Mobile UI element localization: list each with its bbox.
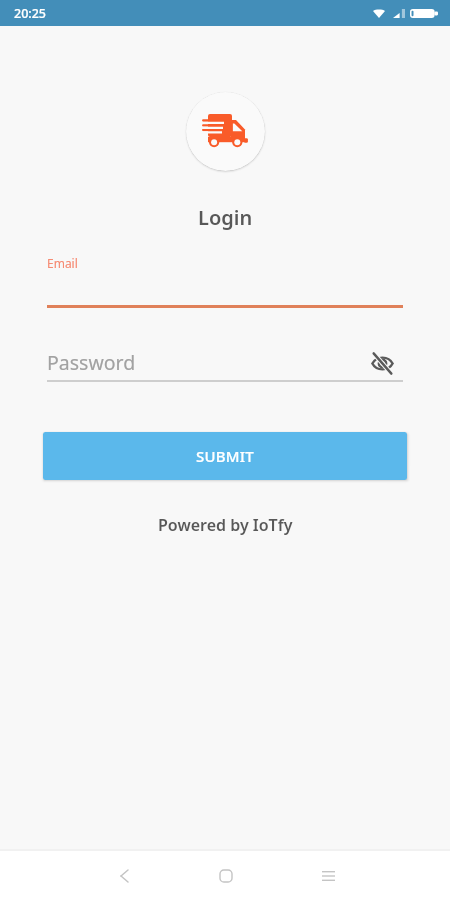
staticText: Powered by IoTfy <box>158 514 293 536</box>
button[interactable]: SUBMIT <box>43 432 407 480</box>
button[interactable]: Home <box>175 851 276 900</box>
staticText: Login <box>198 204 253 231</box>
staticText: 20:25 <box>14 5 47 22</box>
button[interactable]: Back <box>73 851 175 900</box>
staticText: Email <box>47 255 78 271</box>
staticText: Password <box>47 349 136 376</box>
button[interactable]: Recent apps <box>276 851 377 900</box>
staticText: SUBMIT <box>196 446 254 466</box>
button[interactable]: Show password <box>369 350 395 376</box>
